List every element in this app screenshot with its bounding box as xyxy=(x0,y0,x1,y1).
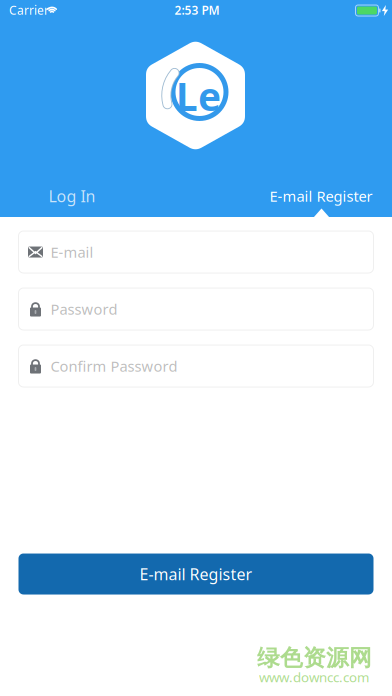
staticText: www.downcc.com xyxy=(259,668,369,686)
staticText: Carrier xyxy=(9,2,49,18)
button[interactable]: Password xyxy=(18,288,373,330)
staticText: Password xyxy=(50,299,117,319)
staticText: Le xyxy=(176,70,221,122)
button[interactable]: Confirm Password xyxy=(18,345,373,387)
staticText: Confirm Password xyxy=(50,356,177,376)
staticText: 2:53 PM xyxy=(174,2,219,18)
button[interactable]: E-mail Register xyxy=(223,174,392,218)
button[interactable]: Log In xyxy=(0,174,170,218)
button[interactable]: E-mail xyxy=(18,231,373,273)
staticText: E-mail Register xyxy=(139,563,252,585)
staticText: 绿色资源网 xyxy=(257,644,372,672)
staticText: E-mail Register xyxy=(269,186,372,206)
button[interactable]: E-mail Register xyxy=(18,553,373,594)
staticText: Log In xyxy=(48,185,95,207)
staticText: E-mail xyxy=(50,242,93,262)
